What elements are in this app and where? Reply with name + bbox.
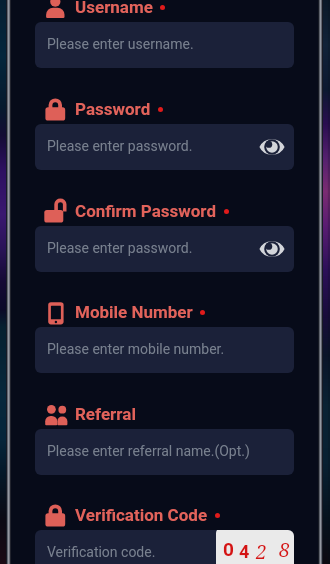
staticText: 4 [239,541,250,562]
staticText: Please enter referral name.(Opt.) [47,443,250,459]
staticText: Confirm Password [75,201,217,221]
staticText: Password [75,99,151,119]
staticText: Verification code. [47,544,156,560]
staticText: Please enter username. [47,36,194,52]
button[interactable]: Verification code. [35,530,294,564]
button[interactable]: Please enter referral name.(Opt.) [35,429,294,475]
button[interactable]: Please enter password. [35,226,294,272]
staticText: Please enter password. [47,138,193,154]
button[interactable]: Please enter mobile number. [35,327,294,373]
button[interactable]: Show password [257,135,287,159]
staticText: Mobile Number [75,302,193,322]
staticText: 8 [279,537,290,563]
staticText: Username [75,0,153,17]
staticText: Please enter password. [47,240,193,256]
button[interactable]: Show password [257,237,287,261]
staticText: Please enter mobile number. [47,341,225,357]
staticText: 2 [256,539,267,564]
staticText: Verification Code [75,505,208,525]
button[interactable]: Refresh verification code [216,530,294,564]
button[interactable]: Please enter username. [35,22,294,68]
button[interactable]: Please enter password. [35,124,294,170]
staticText: 0 [223,538,234,560]
staticText: Referral [75,404,136,424]
